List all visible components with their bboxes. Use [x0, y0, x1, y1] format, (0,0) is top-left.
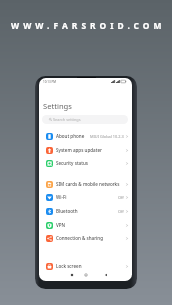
staticText: SIM cards & mobile networks [56, 181, 120, 187]
staticText: Security status [56, 160, 89, 166]
button[interactable]: Lock screen [39, 259, 132, 273]
button[interactable]: About phone [39, 129, 132, 143]
button[interactable]: Recent apps [67, 270, 77, 280]
button[interactable]: SIM cards & mobile networks [39, 177, 132, 191]
staticText: Bluetooth [56, 208, 78, 214]
staticText: Off [118, 209, 124, 214]
button[interactable]: Home [81, 270, 91, 280]
staticText: MIUI Global 10.2.3 [90, 134, 124, 139]
button[interactable]: Connection & sharing [39, 231, 132, 245]
button[interactable]: Wi-Fi [39, 190, 132, 204]
staticText: System apps updater [56, 147, 102, 153]
staticText: VPN [56, 222, 66, 228]
staticText: Lock screen [56, 263, 82, 269]
staticText: Wi-Fi [56, 194, 67, 200]
button[interactable]: Security status [39, 156, 132, 170]
staticText: About phone [56, 133, 85, 139]
button[interactable]: Back [101, 270, 111, 280]
staticText: Settings [43, 101, 72, 111]
staticText: Search settings [53, 117, 81, 122]
button[interactable]: System apps updater [39, 143, 132, 157]
staticText: Off [118, 195, 124, 200]
button[interactable]: VPN [39, 218, 132, 232]
staticText: 10:13 PM [43, 80, 56, 84]
button[interactable]: Bluetooth [39, 204, 132, 218]
staticText: WWW.FARSROID.COM [11, 20, 166, 31]
button[interactable]: Search settings [42, 115, 128, 124]
staticText: Connection & sharing [56, 235, 104, 241]
